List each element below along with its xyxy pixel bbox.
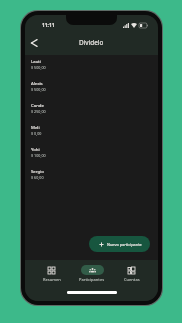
staticText: Meli (31, 124, 40, 130)
staticText: $ 0,00 (31, 131, 42, 136)
button[interactable]: Lauti (25, 56, 158, 78)
staticText: $ 60,00 (31, 175, 44, 180)
staticText: Alexis (31, 80, 43, 86)
button[interactable]: Back (27, 36, 41, 50)
staticText: Cande (31, 102, 44, 108)
staticText: $ 100,00 (31, 153, 46, 158)
staticText: $ 500,00 (31, 87, 46, 92)
button[interactable]: Sergio (25, 166, 158, 188)
button[interactable]: Meli (25, 122, 158, 144)
staticText: Cuentas (124, 277, 140, 282)
button[interactable]: Resumen (39, 265, 64, 282)
staticText: Lauti (31, 58, 41, 64)
staticText: Dividelo (79, 38, 104, 47)
staticText: Nuevo participante (107, 242, 142, 247)
staticText: $ 500,00 (31, 65, 46, 70)
staticText: Yohi (31, 146, 40, 152)
button[interactable]: Yohi (25, 144, 158, 166)
button[interactable]: Nuevo participante (89, 236, 150, 252)
staticText: $ 250,00 (31, 109, 46, 114)
button[interactable]: Cande (25, 100, 158, 122)
staticText: Resumen (43, 277, 61, 282)
staticText: 11:11 (42, 22, 55, 29)
staticText: Participantes (79, 277, 105, 282)
staticText: Sergio (31, 168, 44, 174)
button[interactable]: Cuentas (119, 265, 144, 282)
button[interactable]: Alexis (25, 78, 158, 100)
button[interactable]: Participantes (78, 265, 106, 282)
